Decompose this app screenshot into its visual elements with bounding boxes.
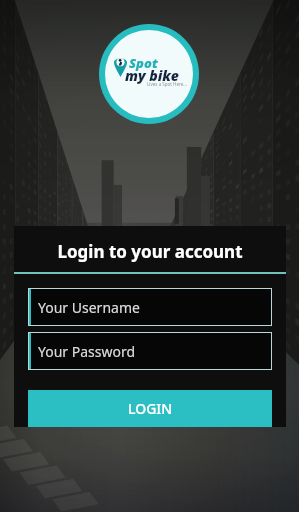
staticText: Spot — [129, 54, 158, 72]
button[interactable]: Your Username — [28, 288, 272, 326]
staticText: Login to your account — [14, 240, 286, 263]
button[interactable]: LOGIN — [28, 390, 272, 427]
staticText: my bike — [125, 66, 179, 85]
button[interactable]: Your Password — [28, 332, 272, 370]
staticText: Your Username — [38, 298, 140, 317]
staticText: Your Password — [38, 342, 136, 361]
staticText: LOGIN — [128, 399, 173, 418]
staticText: Lives a Spot Here... — [147, 81, 187, 87]
